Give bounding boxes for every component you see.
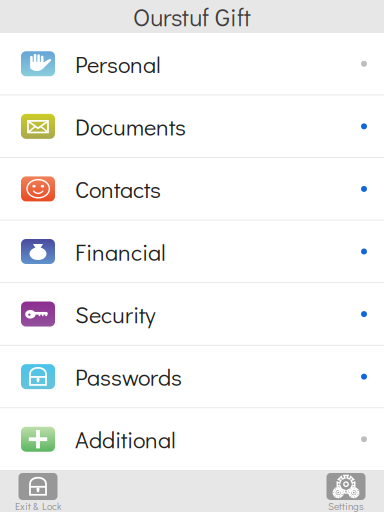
button[interactable]: Personal <box>0 33 384 96</box>
button[interactable]: Additional <box>0 408 384 471</box>
button[interactable]: Contacts <box>0 158 384 221</box>
button[interactable]: Passwords <box>0 346 384 408</box>
staticText: Additional <box>75 424 176 455</box>
staticText: Settings <box>328 499 364 512</box>
staticText: Documents <box>75 111 186 142</box>
button[interactable]: Financial <box>0 221 384 283</box>
staticText: Passwords <box>75 361 182 392</box>
staticText: Ourstuf Gift <box>133 0 251 33</box>
staticText: Financial <box>75 236 166 267</box>
button[interactable]: Settings <box>326 471 365 512</box>
button[interactable]: Documents <box>0 96 384 158</box>
staticText: Exit & Lock <box>15 499 61 512</box>
staticText: Contacts <box>75 173 161 204</box>
staticText: Personal <box>75 48 161 79</box>
button[interactable]: Exit & Lock <box>15 471 61 512</box>
button[interactable]: Security <box>0 283 384 346</box>
staticText: Security <box>75 299 156 329</box>
